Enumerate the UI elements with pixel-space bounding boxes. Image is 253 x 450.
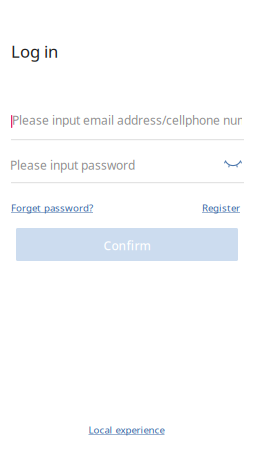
staticText: Forget password? [11,201,93,214]
staticText: Log in [11,40,58,63]
staticText: Please input email address/cellphone num… [12,112,253,128]
staticText: Confirm [103,237,150,254]
staticText: Register [202,201,240,214]
staticText: Local experience [88,423,164,436]
button[interactable]: Local experience [88,423,164,436]
staticText: Please input password [10,157,135,173]
button[interactable]: Confirm [16,228,238,261]
button[interactable]: Forget password? [11,201,93,214]
button[interactable]: Register [200,201,240,214]
button[interactable]: Show password [220,154,246,174]
